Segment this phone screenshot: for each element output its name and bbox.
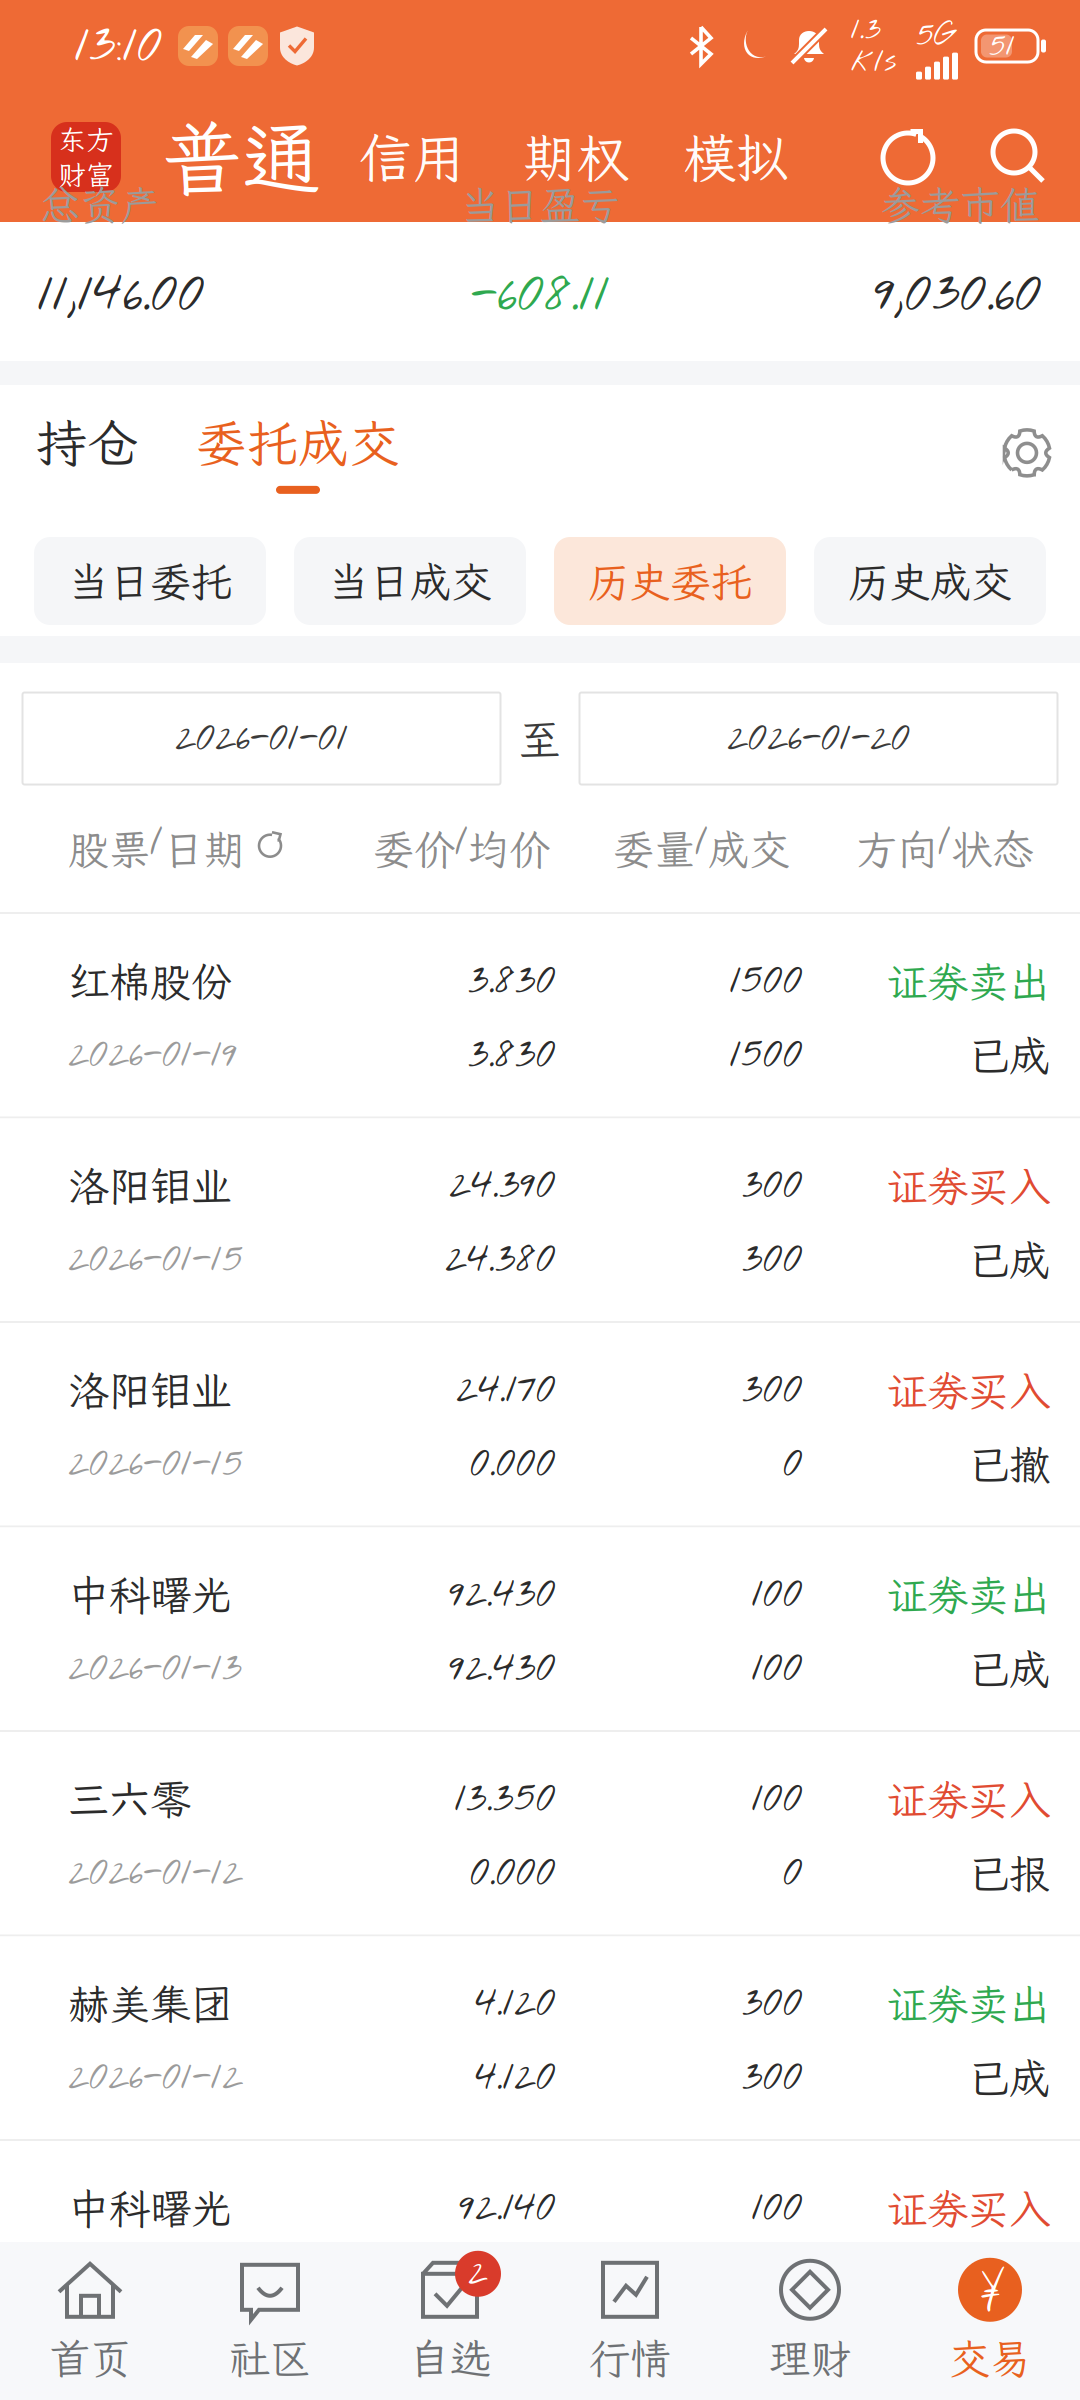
staticText: 100	[752, 1641, 803, 1696]
staticText: 自选	[409, 2331, 491, 2385]
button[interactable]: 社区	[180, 2242, 360, 2400]
staticText: 100	[752, 2180, 803, 2235]
staticText: 洛阳钼业	[68, 1158, 232, 1213]
button[interactable]: 洛阳钼业	[0, 1323, 1080, 1527]
staticText: 洛阳钼业	[68, 1363, 232, 1417]
staticText: 三六零	[68, 1772, 191, 1826]
button[interactable]: 首页	[0, 2242, 180, 2400]
button[interactable]: 2026-01-01	[22, 692, 500, 784]
button[interactable]: 模拟	[669, 104, 803, 210]
staticText: 2026-01-01	[175, 712, 348, 765]
staticText: 300	[742, 1158, 803, 1213]
staticText: 赫美集团	[68, 1976, 232, 2031]
staticText: 证券卖出	[886, 954, 1050, 1008]
staticText: 行情	[589, 2331, 671, 2385]
staticText: 委量/成交	[613, 815, 790, 876]
button[interactable]: 理财	[720, 2242, 900, 2400]
staticText: 证券买入	[886, 1158, 1050, 1213]
button[interactable]: 当日委托	[34, 537, 266, 625]
staticText: 证券买入	[886, 1772, 1050, 1826]
staticText: 红棉股份	[68, 954, 232, 1008]
staticText: 已成	[968, 1232, 1050, 1287]
button[interactable]: 普通	[162, 96, 322, 218]
staticText: 证券买入	[886, 2181, 1050, 2235]
staticText: 东方	[58, 121, 114, 158]
staticText: 已成	[968, 1641, 1050, 1696]
button[interactable]: 赫美集团	[0, 1936, 1080, 2141]
button[interactable]: 三六零	[0, 1732, 1080, 1936]
button[interactable]: 东方财富	[51, 122, 121, 192]
staticText: 股票/日期	[68, 815, 245, 876]
staticText: 300	[742, 2050, 803, 2105]
button[interactable]: 期权	[509, 104, 643, 210]
staticText: 9,030.60	[874, 257, 1042, 332]
staticText: 已成	[968, 1028, 1050, 1082]
button[interactable]: 行情	[540, 2242, 720, 2400]
staticText: 当日成交	[328, 554, 492, 608]
staticText: 委托成交	[196, 409, 400, 476]
staticText: 5G	[916, 12, 955, 59]
staticText: 历史成交	[848, 554, 1012, 608]
staticText: 24.380	[445, 1232, 556, 1287]
staticText: 2026-01-12	[68, 1846, 243, 1900]
button[interactable]: 持仓	[36, 409, 138, 502]
staticText: 1500	[730, 1027, 803, 1082]
staticText: 0.000	[470, 1845, 556, 1900]
button[interactable]: 信用	[345, 104, 479, 210]
staticText: 历史委托	[588, 554, 752, 608]
staticText: 证券买入	[886, 1363, 1050, 1417]
staticText: 持仓	[36, 409, 138, 476]
staticText: ¥	[980, 2258, 999, 2322]
staticText: 期权	[523, 122, 629, 192]
staticText: 2026-01-19	[68, 1028, 237, 1082]
button[interactable]: 历史成交	[814, 537, 1046, 625]
staticText: 当日盈亏	[460, 178, 620, 231]
button[interactable]: ¥	[900, 2242, 1080, 2400]
staticText: 交易	[949, 2331, 1031, 2385]
staticText: 2026-01-20	[727, 712, 910, 765]
staticText: 财富	[58, 156, 114, 193]
button[interactable]: 2026-01-20	[579, 692, 1057, 784]
staticText: 中科曙光	[68, 1567, 232, 1622]
staticText: 已报	[968, 1846, 1050, 1900]
button[interactable]: 搜索	[990, 128, 1048, 186]
staticText: -608.11	[470, 257, 609, 332]
button[interactable]: 中科曙光	[0, 1527, 1080, 1732]
staticText: 普通	[162, 104, 322, 210]
staticText: 信用	[359, 122, 465, 192]
button[interactable]: 设置	[1000, 426, 1054, 480]
staticText: 参考市值	[880, 178, 1040, 231]
staticText: 2026-01-15	[68, 1233, 243, 1286]
staticText: 92.430	[449, 1641, 556, 1696]
staticText: 24.390	[449, 1158, 556, 1213]
staticText: 51	[989, 25, 1015, 67]
button[interactable]: 刷新	[879, 127, 937, 187]
staticText: k/s	[851, 41, 896, 84]
button[interactable]: 红棉股份	[0, 914, 1080, 1118]
staticText: 1500	[730, 953, 803, 1008]
staticText: 300	[742, 1362, 803, 1417]
staticText: 中科曙光	[68, 2181, 232, 2235]
staticText: 2026-01-15	[68, 1437, 243, 1491]
staticText: 1.3	[851, 8, 881, 51]
staticText: 13.350	[455, 1771, 556, 1826]
button[interactable]: 历史委托	[554, 537, 786, 625]
button[interactable]: 当日成交	[294, 537, 526, 625]
staticText: 92.140	[459, 2180, 556, 2235]
staticText: 2026-01-12	[68, 2051, 243, 2104]
staticText: 92.430	[449, 1567, 556, 1622]
staticText: 模拟	[683, 122, 789, 192]
staticText: 0.000	[470, 1436, 556, 1491]
staticText: 13:10	[75, 10, 162, 81]
staticText: 300	[742, 1232, 803, 1287]
staticText: 300	[742, 1976, 803, 2031]
staticText: 社区	[229, 2331, 311, 2385]
staticText: 24.170	[456, 1362, 556, 1417]
button[interactable]: 2	[360, 2242, 540, 2400]
button[interactable]: 洛阳钼业	[0, 1118, 1080, 1323]
staticText: 3.830	[468, 953, 556, 1008]
staticText: 总资产	[40, 178, 160, 231]
staticText: 委价/均价	[373, 815, 550, 876]
button[interactable]: 委托成交	[196, 409, 400, 502]
staticText: 至	[518, 710, 561, 767]
